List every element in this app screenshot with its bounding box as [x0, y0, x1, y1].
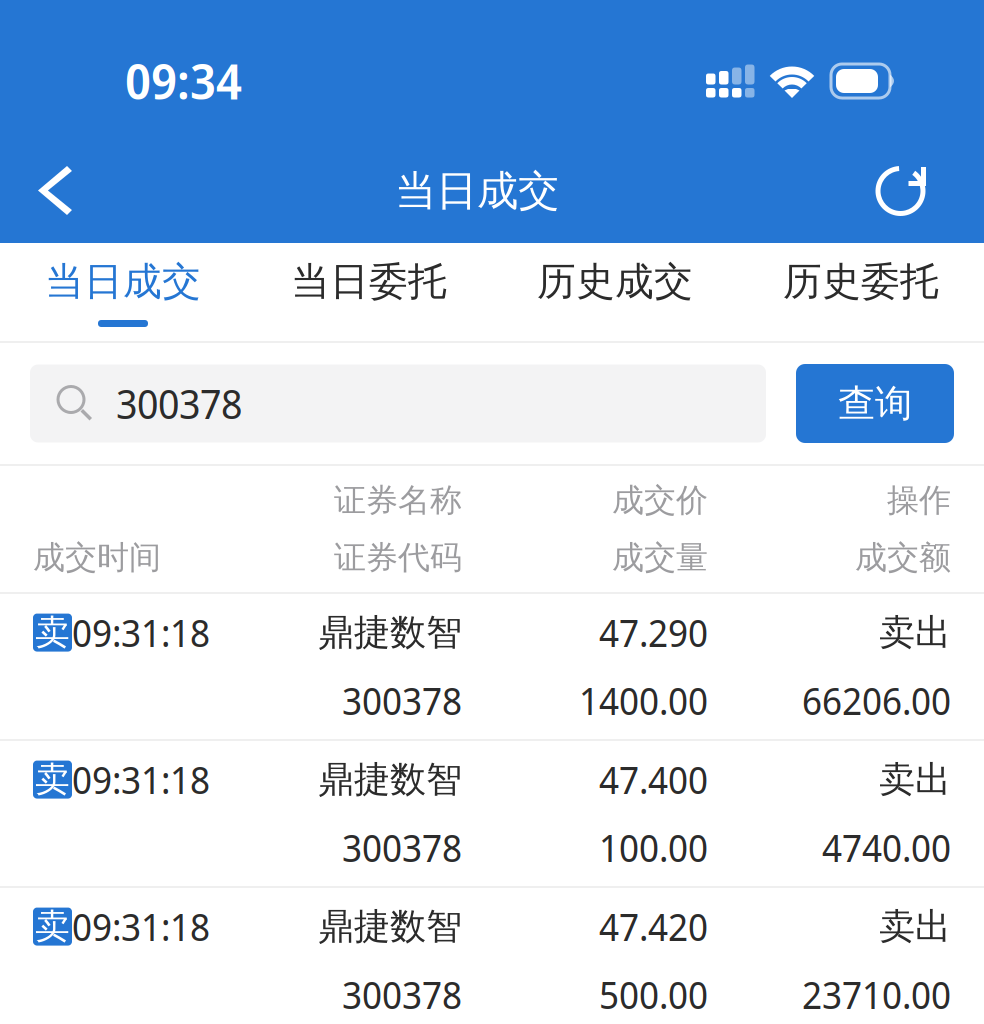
staticText: 当日委托 — [291, 257, 447, 306]
staticText: 300378 — [342, 675, 462, 726]
button[interactable]: 卖 — [0, 888, 984, 1024]
staticText: 47.400 — [599, 754, 708, 805]
staticText: 当日成交 — [45, 257, 201, 306]
staticText: 成交量 — [612, 537, 708, 578]
staticText: 66206.00 — [802, 675, 951, 726]
staticText: 操作 — [887, 480, 951, 520]
staticText: 查询 — [838, 380, 912, 427]
staticText: 100.00 — [599, 822, 708, 873]
staticText: 09:31:18 — [72, 754, 210, 805]
staticText: 23710.00 — [802, 969, 951, 1020]
button[interactable]: 卖 — [0, 741, 984, 886]
staticText: 成交时间 — [33, 537, 161, 578]
staticText: 鼎捷数智 — [318, 610, 462, 655]
staticText: 09:31:18 — [72, 901, 210, 952]
staticText: 鼎捷数智 — [318, 904, 462, 949]
button[interactable]: 当日委托 — [246, 243, 492, 341]
staticText: 历史委托 — [783, 257, 939, 306]
staticText: 1400.00 — [579, 675, 708, 726]
button[interactable]: 历史委托 — [738, 243, 984, 341]
staticText: 卖 — [35, 758, 70, 801]
staticText: 500.00 — [599, 969, 708, 1020]
staticText: 卖出 — [879, 610, 951, 655]
staticText: 4740.00 — [822, 822, 951, 873]
staticText: 300378 — [116, 376, 242, 431]
staticText: 卖 — [35, 611, 70, 654]
staticText: 47.290 — [599, 607, 708, 658]
button[interactable]: Refresh — [863, 153, 939, 229]
staticText: 卖 — [35, 905, 70, 948]
staticText: 47.420 — [599, 901, 708, 952]
staticText: 成交额 — [855, 537, 951, 578]
button[interactable]: 历史成交 — [492, 243, 738, 341]
staticText: 09:34 — [125, 48, 242, 114]
button[interactable]: 当日成交 — [0, 243, 246, 341]
button[interactable]: 查询 — [796, 364, 954, 443]
button[interactable]: Back — [15, 153, 91, 229]
staticText: 卖出 — [879, 904, 951, 949]
staticText: 300378 — [342, 969, 462, 1020]
button[interactable]: 卖 — [0, 594, 984, 739]
staticText: 卖出 — [879, 757, 951, 802]
staticText: 鼎捷数智 — [318, 757, 462, 802]
staticText: 证券名称 — [334, 480, 462, 520]
staticText: 成交价 — [612, 480, 708, 520]
staticText: 证券代码 — [334, 537, 462, 578]
staticText: 09:31:18 — [72, 607, 210, 658]
staticText: 历史成交 — [537, 257, 693, 306]
staticText: 300378 — [342, 822, 462, 873]
staticText: 当日成交 — [395, 165, 559, 217]
